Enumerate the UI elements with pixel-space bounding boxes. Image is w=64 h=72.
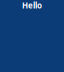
staticText: Hello [22,0,42,11]
